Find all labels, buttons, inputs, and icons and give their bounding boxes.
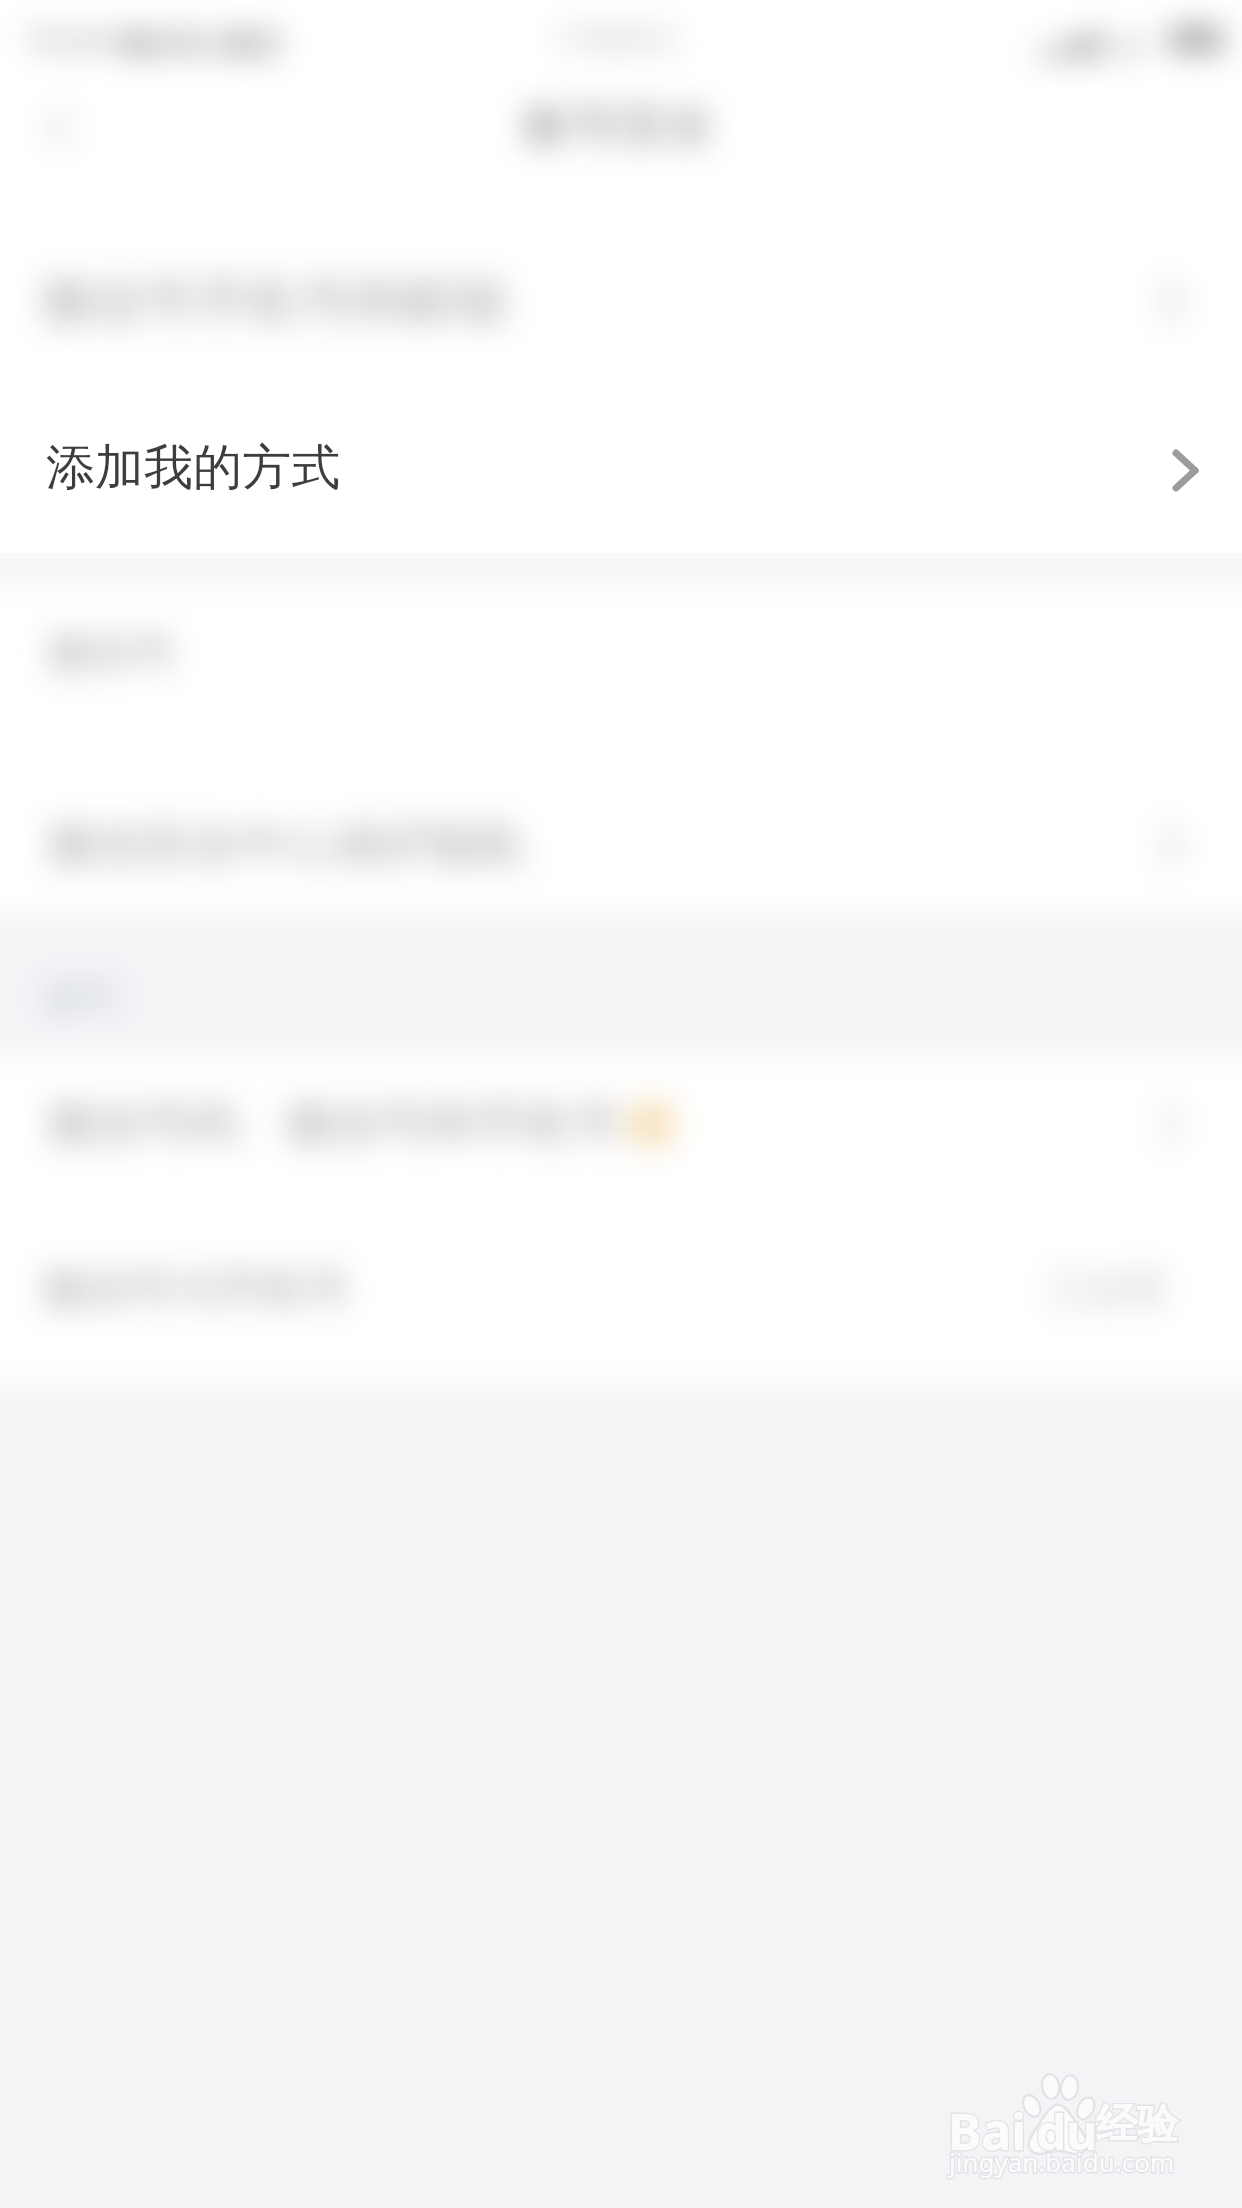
- staticText: jingyan.baidu.com: [949, 2144, 1175, 2179]
- staticText: 10:24 ▣▤▥ ▦▧: [24, 17, 282, 62]
- staticText: jingyan.baidu.com: [949, 2144, 1175, 2179]
- staticText: Bai: [948, 2097, 1027, 2165]
- staticText: 经验: [1096, 2099, 1178, 2151]
- other: Open: [1173, 450, 1198, 491]
- button[interactable]: 微信号手机号和邮箱: [0, 210, 1242, 393]
- button[interactable]: 微信号与手机号: [0, 1194, 1242, 1384]
- button[interactable]: 添加我的方式: [0, 393, 1242, 553]
- button[interactable]: 微信号码: [0, 1054, 1242, 1194]
- staticText: 微信号和手机号: [285, 1094, 621, 1154]
- staticText: 微信号手机号和邮箱: [40, 269, 508, 335]
- staticText: 微信安全中心保护隐私: [47, 815, 527, 875]
- staticText: 微信号与手机号: [42, 1262, 350, 1317]
- button[interactable]: 微信号: [0, 583, 1242, 705]
- staticText: 账号安全: [523, 96, 715, 156]
- staticText: du: [1036, 2099, 1098, 2164]
- staticText: du: [1036, 2099, 1098, 2164]
- button[interactable]: 微信安全中心保护隐私: [0, 705, 1242, 918]
- staticText: 微信号码: [47, 1094, 239, 1154]
- staticText: ▂▄▆ ▲: [1036, 19, 1168, 60]
- staticText: 经验: [1096, 2099, 1178, 2151]
- staticText: Bai: [948, 2097, 1027, 2165]
- staticText: 微信号: [47, 626, 176, 680]
- staticText: 添加我的方式: [46, 437, 340, 499]
